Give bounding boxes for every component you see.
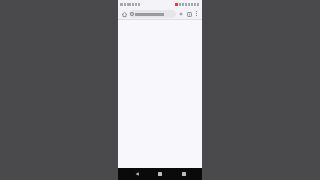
- button[interactable]: Back: [132, 169, 142, 179]
- button[interactable]: Switch tabs: [185, 10, 193, 18]
- button[interactable]: More options: [193, 10, 200, 17]
- button[interactable]: Share: [177, 10, 185, 18]
- button[interactable]: Home: [155, 169, 165, 179]
- button[interactable]: Recent apps: [179, 169, 189, 179]
- button[interactable]: [129, 10, 176, 18]
- button[interactable]: Home: [120, 10, 128, 18]
